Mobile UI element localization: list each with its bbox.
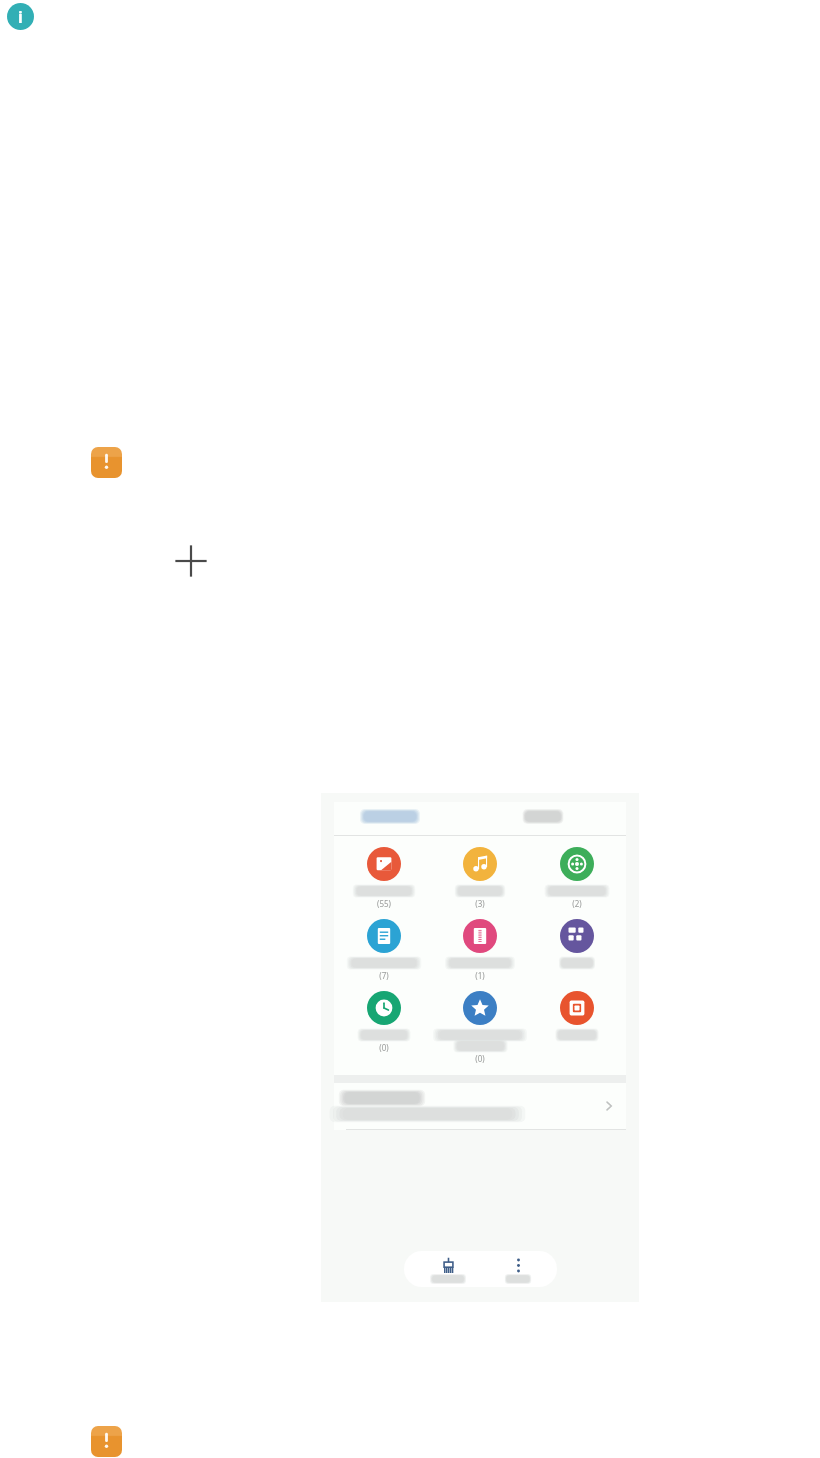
- button[interactable]: Documents: [337, 919, 431, 981]
- button[interactable]: Installation files: [530, 991, 624, 1039]
- button[interactable]: Images: [337, 847, 431, 909]
- button[interactable]: Apps: [530, 919, 624, 967]
- button[interactable]: Archives: [433, 919, 527, 981]
- button[interactable]: Downloads: [337, 991, 431, 1053]
- staticText: (3): [475, 898, 485, 909]
- button[interactable]: Clean up: [417, 1257, 479, 1282]
- button[interactable]: App icon: [91, 1426, 122, 1457]
- staticText: (0): [379, 1042, 389, 1053]
- staticText: (1): [475, 970, 485, 981]
- button[interactable]: Videos: [530, 847, 624, 909]
- button[interactable]: Information: [7, 3, 34, 30]
- staticText: (0): [475, 1053, 485, 1064]
- button[interactable]: Favourites: [433, 991, 527, 1064]
- staticText: (2): [572, 898, 582, 909]
- button[interactable]: Audio: [433, 847, 527, 909]
- staticText: (55): [377, 898, 391, 909]
- button[interactable]: App icon: [91, 447, 122, 478]
- staticText: (7): [379, 970, 389, 981]
- button[interactable]: More options: [492, 1257, 544, 1282]
- staticText: i: [18, 6, 23, 28]
- button[interactable]: Internal storage: [334, 1083, 626, 1129]
